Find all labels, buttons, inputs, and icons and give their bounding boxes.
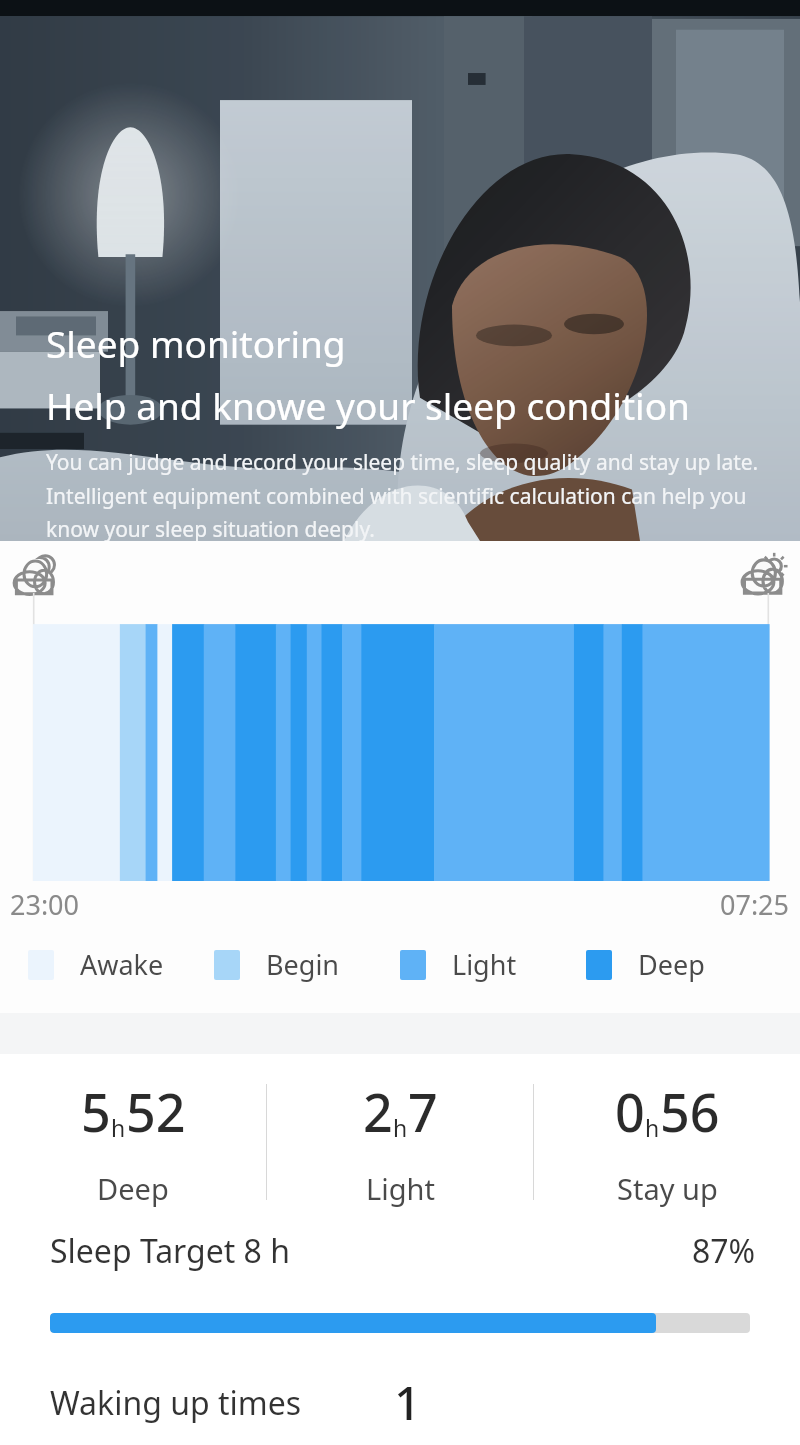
button[interactable]: Begin (214, 946, 400, 983)
staticText: Deep (97, 1169, 169, 1208)
staticText: h (645, 1112, 660, 1143)
button[interactable]: Deep (586, 946, 772, 983)
button[interactable]: Bedtime weather (14, 553, 58, 597)
staticText: 07:25 (720, 886, 790, 923)
staticText: 5 (81, 1076, 111, 1147)
staticText: 1 (394, 1371, 421, 1434)
staticText: 23:00 (10, 886, 80, 923)
staticText: 87% (692, 1229, 756, 1273)
button[interactable]: 5 (0, 1076, 266, 1208)
staticText: You can judge and record your sleep time… (46, 448, 770, 543)
staticText: 56 (660, 1076, 720, 1147)
button[interactable]: Light (400, 946, 586, 983)
button[interactable]: Awake (28, 946, 214, 983)
staticText: Begin (266, 946, 340, 983)
staticText: Sleep Target 8 h (50, 1229, 291, 1273)
button[interactable]: Wake-up weather (742, 551, 788, 597)
staticText: Light (452, 946, 517, 983)
staticText: 52 (126, 1076, 186, 1147)
staticText: 2 (363, 1076, 393, 1147)
staticText: Stay up (617, 1169, 718, 1208)
button[interactable]: Waking up times (50, 1371, 800, 1434)
staticText: Waking up times (50, 1381, 302, 1425)
staticText: h (393, 1112, 408, 1143)
button[interactable]: 2 (267, 1076, 533, 1208)
button[interactable] (50, 1313, 750, 1333)
staticText: h (111, 1112, 126, 1143)
staticText: Sleep monitoring (46, 318, 346, 368)
staticText: Deep (638, 946, 705, 983)
button[interactable]: 0 (534, 1076, 800, 1208)
staticText: 7 (408, 1076, 438, 1147)
staticText: Awake (80, 946, 164, 983)
staticText: 0 (615, 1076, 645, 1147)
staticText: Help and knowe your sleep condition (46, 380, 690, 430)
button[interactable]: Sleep Target 8 h (50, 1229, 756, 1273)
staticText: Light (366, 1169, 435, 1208)
